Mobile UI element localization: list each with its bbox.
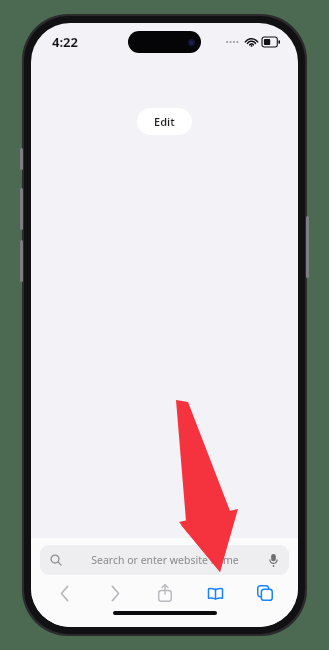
button[interactable]: Share <box>140 575 190 611</box>
button[interactable]: Edit <box>137 108 192 135</box>
other: Voice search <box>269 554 278 567</box>
other: Search <box>50 554 62 566</box>
button[interactable]: Bookmarks <box>190 575 240 611</box>
button[interactable]: Forward <box>90 575 140 611</box>
staticText: 4:22 <box>52 33 78 51</box>
button[interactable]: Search <box>40 545 289 575</box>
button[interactable]: Back <box>39 575 90 611</box>
staticText: Edit <box>154 114 175 129</box>
button[interactable]: Tabs <box>240 575 290 611</box>
staticText: Search or enter website name <box>91 553 239 567</box>
